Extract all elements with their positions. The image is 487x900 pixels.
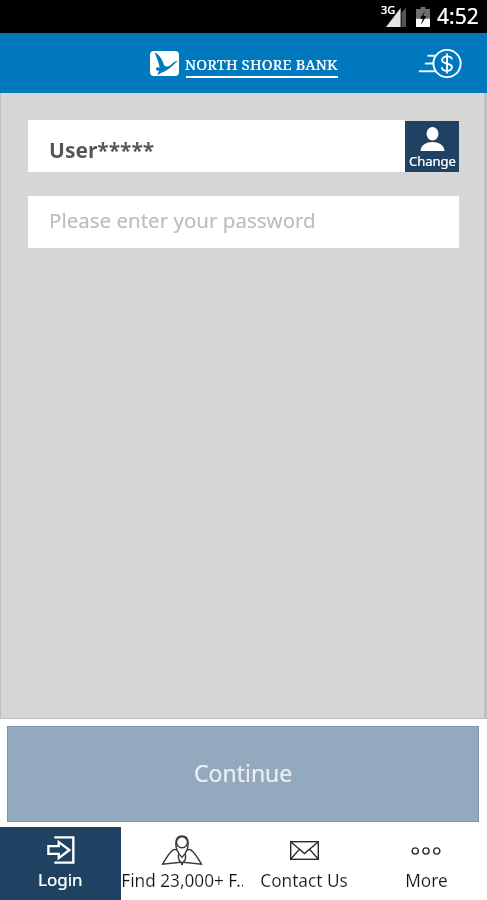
staticText: Please enter your password (49, 206, 316, 234)
staticText: More (405, 869, 448, 892)
button[interactable]: Continue (7, 726, 479, 822)
button[interactable]: Login (0, 827, 121, 900)
staticText: Find 23,000+ F… (121, 869, 243, 892)
staticText: 4:52 (437, 2, 479, 31)
staticText: Login (38, 868, 83, 891)
staticText: Continue (194, 757, 293, 788)
staticText: 3G (381, 2, 396, 17)
staticText: User***** (49, 136, 155, 165)
button[interactable]: Contact Us (243, 827, 365, 900)
staticText: Contact Us (260, 869, 348, 892)
button[interactable]: More (365, 827, 487, 900)
staticText: Change (409, 152, 456, 170)
button[interactable]: Transfer money (416, 40, 462, 86)
button[interactable]: Find 23,000+ F… (121, 827, 243, 900)
button[interactable]: Change (405, 121, 459, 172)
staticText: NORTH SHORE BANK (185, 54, 338, 74)
